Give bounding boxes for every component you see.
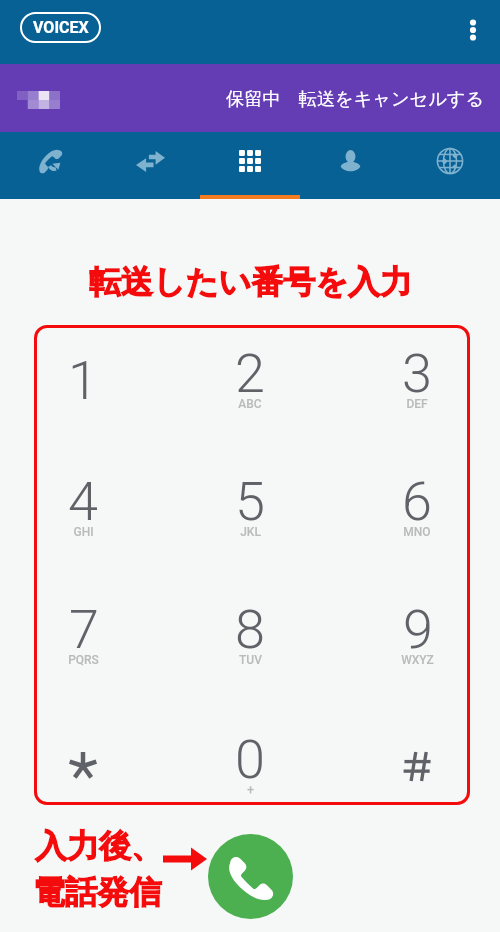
staticText: 0 [235,728,265,791]
button[interactable]: 4 [0,451,166,579]
button[interactable]: Keypad [200,132,300,199]
button[interactable]: Contacts [300,132,400,199]
staticText: 1 [68,349,98,412]
staticText: MNO [403,525,431,539]
button[interactable]: Recents [0,132,100,199]
button[interactable]: 5 [167,451,333,579]
staticText: TUV [239,653,262,667]
button[interactable] [0,709,166,837]
button[interactable]: 7 [0,579,166,707]
button[interactable] [334,709,500,837]
staticText: DEF [406,397,428,411]
button[interactable]: Web [400,132,500,199]
staticText: GHI [73,525,94,539]
button[interactable]: 8 [167,579,333,707]
button[interactable]: 電話発信 [208,834,293,919]
button[interactable]: 保留中 転送をキャンセルする [226,86,500,111]
button[interactable]: 6 [334,451,500,579]
staticText: VOICEX [33,18,89,37]
button[interactable]: 2 [167,323,333,451]
staticText: 8 [235,598,265,661]
staticText: + [247,783,254,797]
button[interactable]: 9 [334,579,500,707]
staticText: JKL [240,525,261,539]
staticText: 4 [68,470,98,533]
staticText: 電話発信 [33,872,161,912]
button[interactable]: 0 [167,709,333,837]
staticText: 3 [402,342,432,405]
staticText: ABC [238,397,262,411]
button[interactable]: Transfer [100,132,200,199]
staticText: 転送したい番号を入力 [89,262,412,302]
staticText: 7 [69,598,99,661]
staticText: 9 [403,598,433,661]
staticText: WXYZ [401,653,434,667]
staticText: 保留中 転送をキャンセルする [226,86,485,111]
button[interactable]: More options [449,6,497,54]
button[interactable]: VOICEX [20,12,101,43]
button[interactable]: 3 [334,323,500,451]
staticText: 入力後、 [35,826,163,866]
staticText: 5 [235,470,265,533]
button[interactable]: 1 [0,323,166,451]
staticText: 6 [402,470,432,533]
staticText: 2 [235,342,265,405]
staticText: PQRS [68,653,99,667]
